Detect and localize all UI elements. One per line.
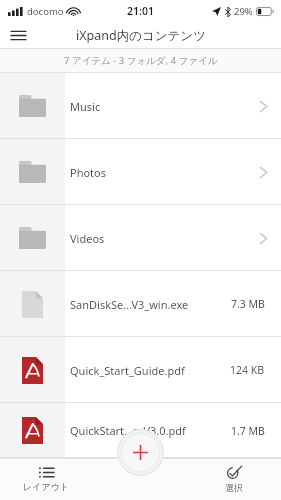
staticText: iXpand内のコンテンツ [76,27,206,44]
staticText: 7 アイテム - 3 フォルダ, 4 ファイル [64,54,218,67]
button[interactable]: レイアウト [0,458,93,500]
staticText: 21:01 [127,4,154,18]
staticText: 1.7 MB [231,424,265,438]
button[interactable]: SanDiskSe...V3_win.exe [0,271,281,337]
staticText: Quick_Start_Guide.pdf [70,363,185,378]
staticText: QuickStart...ssV3.0.pdf [70,423,186,438]
staticText: レイアウト [23,481,70,492]
button[interactable]: 選択 [187,458,281,500]
staticText: 7.3 MB [231,297,265,311]
button[interactable]: Menu [0,22,36,48]
staticText: Videos [70,231,105,246]
button[interactable]: Music [0,73,281,139]
staticText: 29% [234,5,253,18]
button[interactable]: QuickStart...ssV3.0.pdf [0,403,281,458]
button[interactable]: Add [117,429,164,476]
button[interactable]: Quick_Start_Guide.pdf [0,337,281,403]
staticText: 選択 [225,482,243,493]
staticText: SanDiskSe...V3_win.exe [70,297,189,312]
staticText: Photos [70,165,107,180]
staticText: docomo [27,5,64,18]
button[interactable]: Photos [0,139,281,205]
staticText: 124 KB [230,363,265,377]
button[interactable]: Videos [0,205,281,271]
staticText: Music [70,99,101,114]
